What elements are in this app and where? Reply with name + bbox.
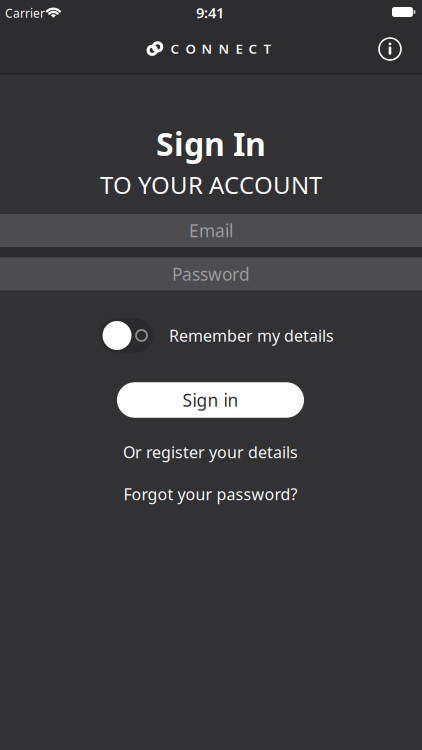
button[interactable]	[375, 34, 405, 64]
staticText: Forgot your password?	[123, 483, 297, 505]
button[interactable]: Email	[0, 214, 422, 247]
staticText: Email	[189, 219, 233, 242]
staticText: C O N N E C T	[170, 40, 271, 57]
staticText: 9:41	[196, 3, 224, 22]
staticText: Remember my details	[169, 325, 334, 346]
staticText: Password	[172, 262, 250, 285]
staticText: Sign In	[156, 122, 266, 165]
staticText: TO YOUR ACCOUNT	[100, 169, 322, 201]
staticText: Sign in	[182, 388, 238, 411]
button[interactable]: Remember my details	[100, 318, 334, 352]
staticText: Carrier	[5, 5, 45, 21]
button[interactable]: Sign in	[117, 382, 304, 418]
button[interactable]: Or register your details	[123, 441, 298, 463]
button[interactable]: Forgot your password?	[123, 483, 297, 505]
staticText: Or register your details	[123, 441, 298, 463]
button[interactable]: Password	[0, 257, 422, 290]
